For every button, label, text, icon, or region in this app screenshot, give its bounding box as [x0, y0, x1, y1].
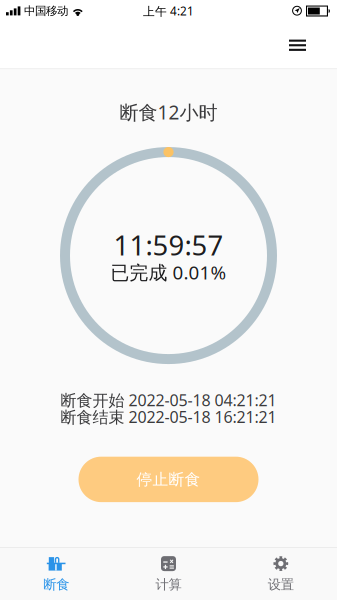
- staticText: 断食开始 2022-05-18 04:21:21: [60, 389, 276, 411]
- staticText: 断食结束 2022-05-18 16:21:21: [60, 406, 276, 428]
- button[interactable]: Menu: [273, 30, 337, 61]
- button[interactable]: 计算: [112, 548, 225, 600]
- staticText: 上午 4:21: [143, 3, 194, 19]
- staticText: 停止断食: [136, 469, 200, 489]
- button[interactable]: 设置: [225, 548, 337, 600]
- staticText: 设置: [268, 576, 294, 593]
- staticText: 断食: [43, 576, 69, 593]
- staticText: 断食12小时: [119, 99, 217, 125]
- button[interactable]: 停止断食: [78, 457, 258, 502]
- staticText: 11:59:57: [113, 226, 223, 263]
- staticText: 已完成 0.01%: [110, 259, 226, 285]
- button[interactable]: 断食: [0, 548, 112, 600]
- staticText: 中国移动: [24, 4, 68, 18]
- staticText: 计算: [155, 576, 181, 593]
